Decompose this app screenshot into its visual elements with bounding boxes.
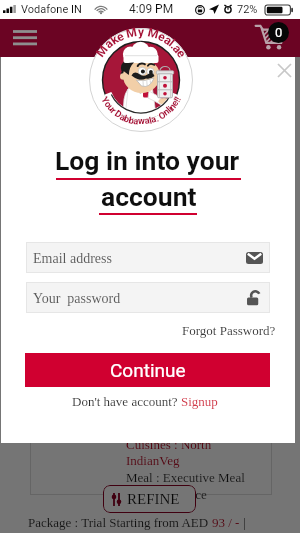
staticText: 4:09 PM — [129, 2, 174, 16]
button[interactable]: Open navigation menu — [9, 30, 41, 56]
staticText: Vodafone IN — [21, 3, 82, 16]
staticText: Email address — [33, 251, 112, 267]
button[interactable]: Email address — [26, 242, 270, 273]
button[interactable]: Cart item count 0 — [268, 22, 289, 43]
staticText: REFINE — [127, 491, 180, 508]
staticText: 72% — [237, 3, 258, 16]
button[interactable]: Close dialog — [275, 61, 294, 80]
staticText: 93 / - — [212, 515, 240, 529]
button[interactable]: Your password — [26, 282, 270, 313]
staticText: Don't have account? — [72, 394, 181, 408]
staticText: Continue — [110, 359, 186, 381]
staticText: Cuisines : North — [126, 437, 212, 451]
staticText: Meal : Executive Meal — [126, 470, 245, 484]
button[interactable]: Shopping cart — [254, 20, 286, 52]
staticText: 0 — [275, 25, 283, 40]
staticText: account — [101, 181, 197, 212]
staticText: Price — [180, 487, 207, 501]
button[interactable]: Signup — [181, 394, 218, 408]
staticText: IndianVeg — [126, 453, 180, 467]
button[interactable]: Continue — [25, 353, 270, 387]
staticText: | — [240, 515, 246, 529]
staticText: Package : Trial Starting from AED — [28, 515, 212, 529]
staticText: Your password — [33, 291, 121, 307]
staticText: Log in into your — [55, 145, 240, 176]
button[interactable]: Forgot Password? — [182, 323, 276, 337]
button[interactable]: REFINE — [103, 485, 196, 513]
